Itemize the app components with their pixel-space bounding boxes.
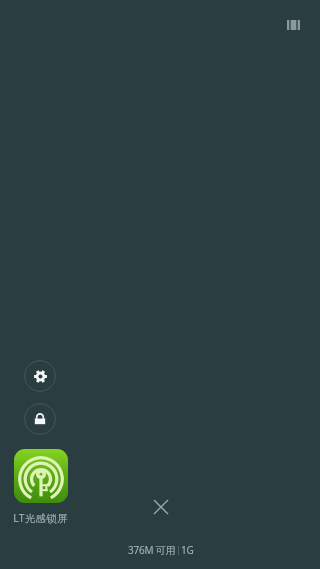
staticText: 1G bbox=[181, 543, 194, 557]
button[interactable]: Recent apps bbox=[281, 14, 305, 36]
button[interactable]: Settings bbox=[24, 360, 56, 392]
button[interactable]: Lock bbox=[24, 403, 56, 435]
button[interactable]: Close bbox=[146, 492, 176, 522]
button[interactable]: LT光感锁屏 bbox=[3, 449, 78, 525]
staticText: LT光感锁屏 bbox=[13, 511, 68, 525]
staticText: 376M 可用 bbox=[128, 543, 176, 557]
